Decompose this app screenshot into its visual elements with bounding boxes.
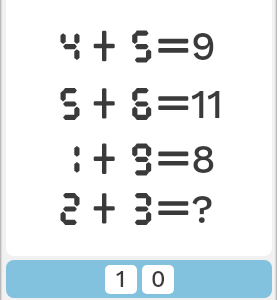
staticText: ? — [191, 186, 214, 233]
button[interactable]: 1 — [105, 265, 137, 294]
staticText: 1 — [116, 266, 126, 293]
staticText: 8 — [191, 136, 216, 183]
button[interactable]: 0 — [142, 265, 174, 294]
button[interactable]: 9 — [6, 0, 272, 256]
staticText: 0 — [151, 266, 166, 293]
staticText: 9 — [191, 23, 216, 70]
staticText: 11 — [191, 81, 224, 128]
